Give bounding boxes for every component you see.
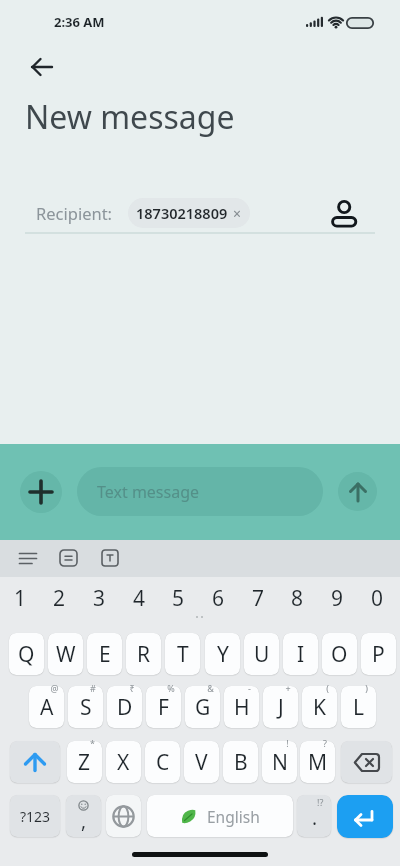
button[interactable] [19,549,37,567]
staticText: 5 [172,584,185,610]
button[interactable]: !? [297,795,331,837]
staticText: J [278,693,284,722]
staticText: ?123 [20,807,51,826]
button[interactable]: Text message [77,467,323,516]
staticText: @ [50,682,59,694]
button[interactable]: H [224,686,259,728]
button[interactable]: I [283,633,318,675]
button[interactable]: K [302,686,337,728]
staticText: W [56,640,76,669]
button[interactable] [101,549,119,567]
staticText: U [254,640,270,669]
staticText: & [207,682,214,694]
staticText: C [156,748,170,777]
button[interactable]: 0 [363,584,391,610]
button[interactable]: A [29,686,64,728]
staticText: + [285,682,291,694]
staticText: ( [326,682,329,694]
button[interactable]: N [262,741,297,783]
button[interactable]: E [87,633,122,675]
staticText: 7 [252,584,265,610]
staticText: New message [25,95,235,139]
button[interactable]: S [68,686,103,728]
button[interactable] [337,795,393,838]
staticText: - [248,682,251,694]
button[interactable]: O [322,633,357,675]
button[interactable]: 2 [45,584,73,610]
staticText: ₹ [129,682,135,694]
staticText: ? [323,737,327,749]
staticText: H [234,693,250,722]
button[interactable]: 18730218809 [128,198,250,228]
button[interactable] [341,741,392,783]
button[interactable]: L [341,686,376,728]
button[interactable]: , [66,795,101,837]
staticText: K [313,693,326,722]
staticText: I [297,640,305,669]
staticText: 2:36 AM [54,13,105,31]
button[interactable]: English [147,795,293,837]
button[interactable]: M [300,741,335,783]
button[interactable]: U [244,633,279,675]
button[interactable]: 5 [164,584,192,610]
button[interactable]: J [263,686,298,728]
staticText: 3 [93,584,106,610]
staticText: English [207,806,260,827]
staticText: B [234,748,248,777]
staticText: 9 [331,584,344,610]
button[interactable]: X [106,741,141,783]
button[interactable]: G [185,686,220,728]
staticText: Recipient: [36,202,113,224]
staticText: Y [217,640,229,669]
staticText: % [167,682,175,694]
staticText: # [90,682,96,694]
button[interactable]: W [48,633,83,675]
button[interactable]: T [165,633,200,675]
button[interactable] [30,56,54,78]
button[interactable]: 4 [125,584,153,610]
staticText: 8 [291,584,304,610]
staticText: V [195,748,208,777]
button[interactable]: 9 [323,584,351,610]
button[interactable] [106,795,141,837]
button[interactable]: B [223,741,258,783]
button[interactable]: Q [9,633,44,675]
button[interactable]: V [184,741,219,783]
button[interactable] [338,472,377,511]
button[interactable]: ?123 [10,795,60,837]
staticText: T [177,640,189,669]
staticText: N [272,748,288,777]
staticText: F [158,693,169,722]
staticText: A [40,693,54,722]
button[interactable]: C [145,741,180,783]
staticText: X [117,748,130,777]
staticText: M [308,748,328,777]
staticText: Text message [97,481,200,503]
staticText: P [372,640,385,669]
staticText: * [90,737,95,749]
staticText: D [117,693,133,722]
staticText: . [312,805,318,831]
staticText: , [81,808,87,834]
button[interactable]: 3 [85,584,113,610]
button[interactable]: D [107,686,142,728]
staticText: L [353,693,365,722]
button[interactable]: Y [205,633,240,675]
button[interactable]: 6 [204,584,232,610]
button[interactable]: R [126,633,161,675]
staticText: 18730218809 [136,203,228,223]
button[interactable] [10,741,60,783]
button[interactable]: Z [67,741,102,783]
button[interactable]: 8 [283,584,311,610]
button[interactable]: F [146,686,181,728]
staticText: 6 [212,584,225,610]
staticText: 4 [133,584,146,610]
staticText: Q [18,640,35,669]
button[interactable]: 7 [244,584,272,610]
button[interactable] [20,471,62,513]
button[interactable]: P [361,633,396,675]
button[interactable] [331,195,358,229]
staticText: O [331,640,348,669]
button[interactable]: 1 [6,584,34,610]
button[interactable] [59,549,78,567]
